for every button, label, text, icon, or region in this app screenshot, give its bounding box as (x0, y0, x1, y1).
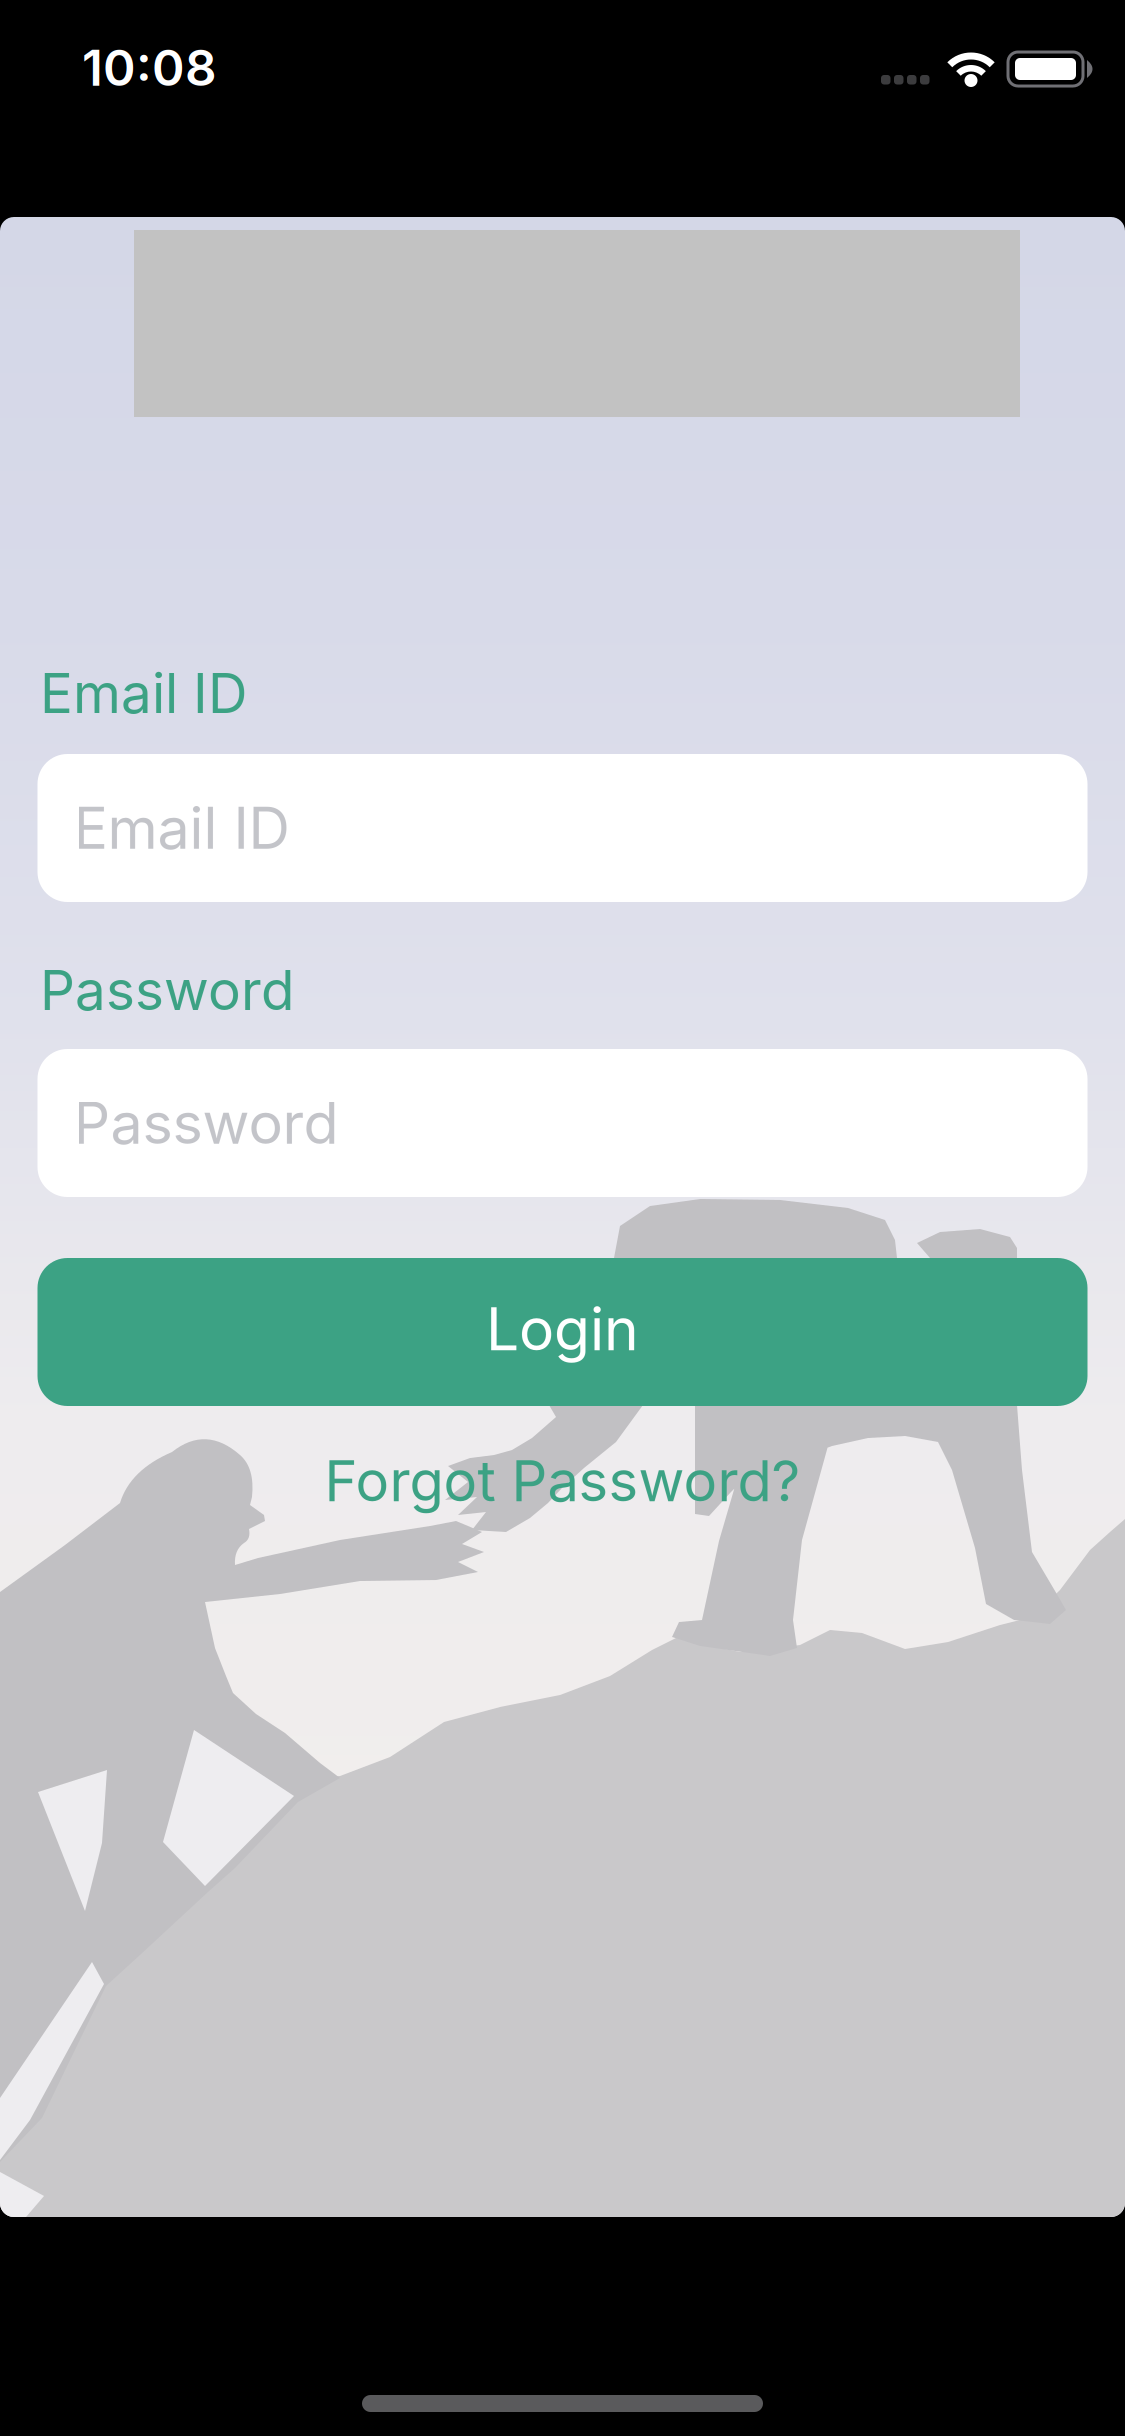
button[interactable]: Login (37, 1258, 1087, 1406)
staticText: Password (40, 957, 294, 1023)
staticText: Forgot Password? (324, 1447, 800, 1515)
button[interactable]: Forgot Password? (37, 1445, 1087, 1517)
staticText: 10:08 (82, 38, 217, 98)
staticText: Email ID (40, 660, 247, 726)
button[interactable]: Email ID (37, 754, 1087, 902)
staticText: Email ID (73, 793, 289, 863)
staticText: Login (486, 1293, 639, 1364)
staticText: Password (73, 1088, 338, 1158)
button[interactable]: Password (37, 1049, 1087, 1197)
